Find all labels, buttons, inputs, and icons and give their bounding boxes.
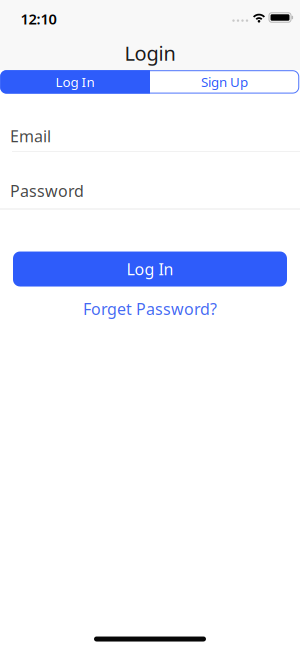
staticText: Forget Password?	[83, 298, 217, 319]
staticText: Log In	[126, 258, 173, 280]
staticText: Log In	[55, 73, 94, 91]
button[interactable]: Log In	[13, 251, 287, 286]
button[interactable]: Sign Up	[150, 70, 299, 94]
button[interactable]: Forget Password?	[83, 298, 217, 319]
button[interactable]: Password	[0, 178, 300, 204]
button[interactable]: Log In	[0, 70, 149, 94]
staticText: 12:10	[20, 9, 56, 29]
button[interactable]: Email	[0, 123, 300, 149]
staticText: Password	[10, 180, 84, 201]
staticText: Email	[10, 125, 51, 147]
staticText: Sign Up	[201, 73, 248, 91]
staticText: Login	[124, 40, 175, 66]
